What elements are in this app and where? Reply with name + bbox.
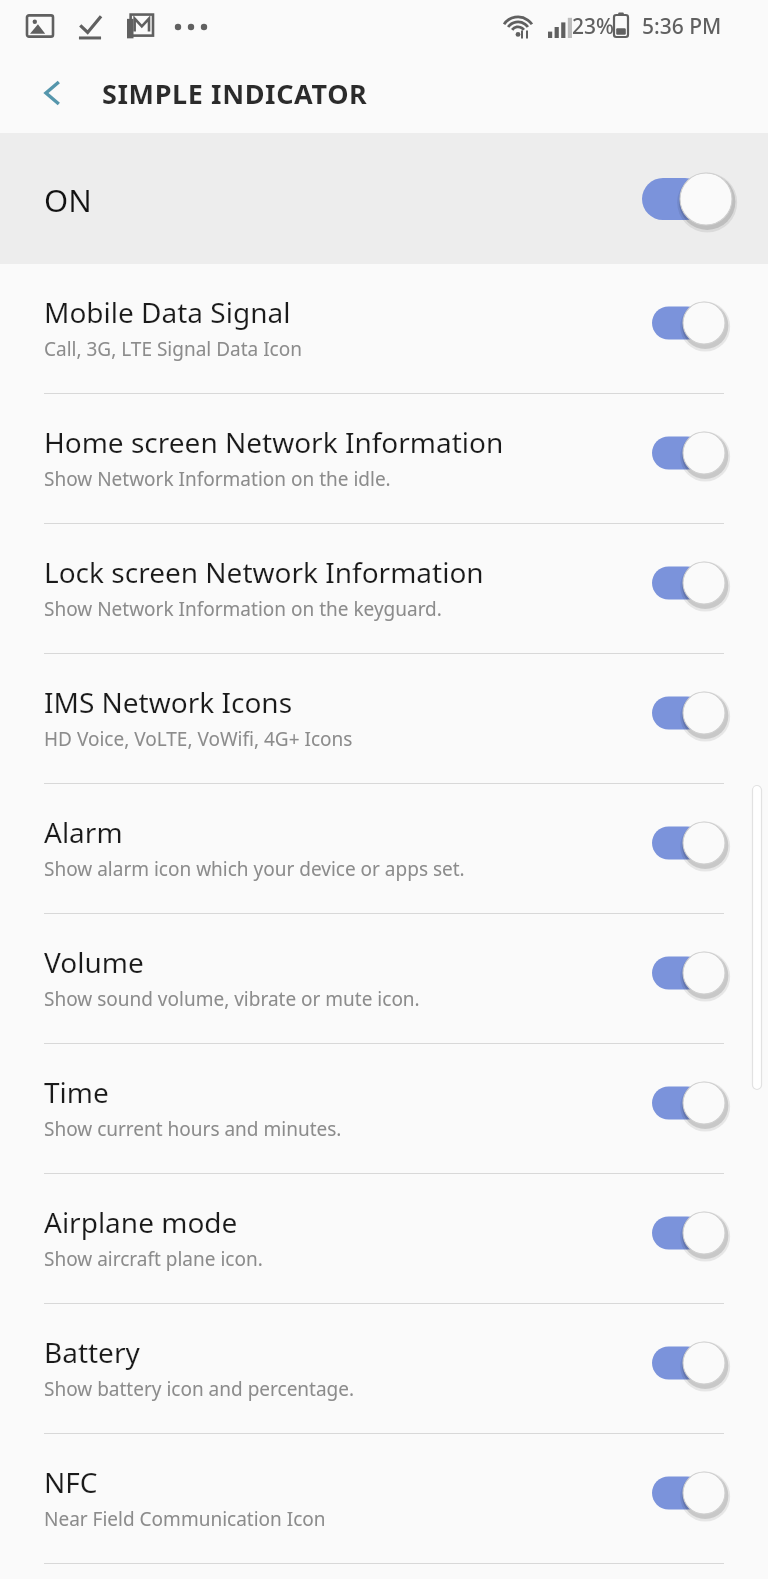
staticText: NFC bbox=[44, 1463, 98, 1501]
staticText: Home screen Network Information bbox=[44, 423, 504, 461]
staticText: Near Field Communication Icon bbox=[44, 1506, 326, 1532]
staticText: Show current hours and minutes. bbox=[44, 1116, 342, 1142]
staticText: Show battery icon and percentage. bbox=[44, 1376, 355, 1402]
staticText: HD Voice, VoLTE, VoWifi, 4G+ Icons bbox=[44, 726, 353, 752]
staticText: Alarm bbox=[44, 813, 123, 851]
staticText: Show aircraft plane icon. bbox=[44, 1246, 263, 1272]
staticText: Show alarm icon which your device or app… bbox=[44, 856, 465, 882]
button[interactable]: Back bbox=[26, 67, 78, 119]
button[interactable]: IMS Network Icons bbox=[0, 654, 768, 784]
staticText: Battery bbox=[44, 1333, 140, 1371]
staticText: Time bbox=[44, 1073, 109, 1111]
staticText: Call, 3G, LTE Signal Data Icon bbox=[44, 336, 302, 362]
staticText: SIMPLE INDICATOR bbox=[102, 75, 368, 112]
button[interactable]: Time bbox=[0, 1044, 768, 1174]
staticText: 5:36 PM bbox=[642, 12, 722, 41]
button[interactable]: Mobile Data Signal bbox=[0, 264, 768, 394]
staticText: Mobile Data Signal bbox=[44, 293, 291, 331]
staticText: Show Network Information on the keyguard… bbox=[44, 596, 442, 622]
button[interactable]: Battery bbox=[0, 1304, 768, 1434]
button[interactable]: Airplane mode bbox=[0, 1174, 768, 1304]
staticText: ON bbox=[44, 179, 92, 221]
button[interactable]: NFC bbox=[0, 1434, 768, 1564]
staticText: 23% bbox=[572, 12, 614, 41]
button[interactable]: Alarm bbox=[0, 784, 768, 914]
staticText: Show sound volume, vibrate or mute icon. bbox=[44, 986, 420, 1012]
staticText: Lock screen Network Information bbox=[44, 553, 484, 591]
button[interactable]: Lock screen Network Information bbox=[0, 524, 768, 654]
staticText: Volume bbox=[44, 943, 144, 981]
button[interactable]: ON bbox=[0, 133, 768, 264]
staticText: Airplane mode bbox=[44, 1203, 238, 1241]
button[interactable]: Volume bbox=[0, 914, 768, 1044]
staticText: Show Network Information on the idle. bbox=[44, 466, 391, 492]
staticText: IMS Network Icons bbox=[44, 683, 293, 721]
button[interactable]: Home screen Network Information bbox=[0, 394, 768, 524]
